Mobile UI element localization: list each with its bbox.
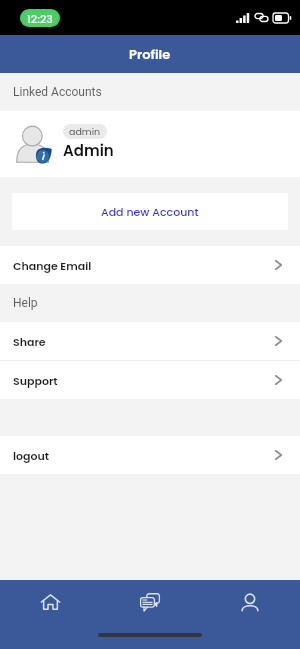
button[interactable]: Share — [0, 322, 300, 360]
staticText: Help — [13, 296, 38, 310]
staticText: Add new Account — [101, 204, 199, 219]
button[interactable]: logout — [0, 436, 300, 474]
staticText: 12:23 — [27, 11, 53, 26]
button[interactable]: Profile — [220, 580, 280, 624]
button[interactable]: Support — [0, 361, 300, 399]
button[interactable]: Add new Account — [12, 193, 288, 230]
staticText: Admin — [63, 140, 114, 161]
staticText: admin — [69, 125, 101, 138]
button[interactable]: admin — [0, 111, 300, 177]
staticText: Change Email — [13, 258, 92, 273]
staticText: Profile — [129, 45, 171, 63]
button[interactable]: Change Email — [0, 246, 300, 284]
staticText: logout — [13, 448, 50, 463]
button[interactable]: Home — [20, 580, 80, 624]
staticText: Share — [13, 334, 46, 349]
button[interactable]: Messages — [120, 580, 180, 624]
staticText: Linked Accounts — [13, 85, 102, 99]
staticText: Support — [13, 373, 58, 388]
